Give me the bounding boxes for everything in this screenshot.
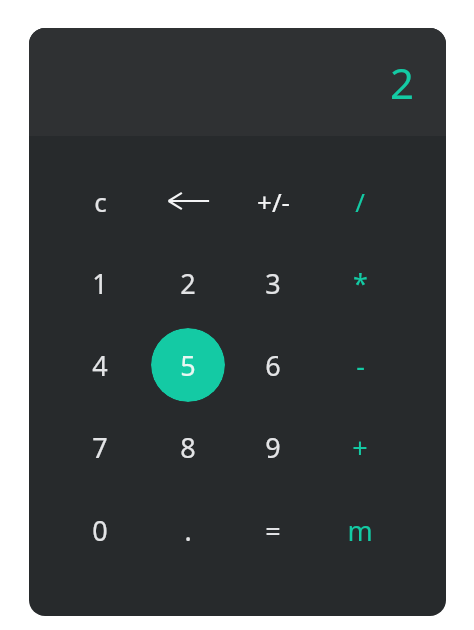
staticText: 7 bbox=[92, 429, 108, 466]
staticText: 2 bbox=[389, 54, 414, 111]
staticText: 1 bbox=[92, 265, 108, 302]
staticText: c bbox=[94, 184, 107, 219]
staticText: 9 bbox=[265, 429, 281, 466]
button[interactable]: 8 bbox=[151, 410, 225, 484]
staticText: = bbox=[265, 512, 281, 549]
button[interactable]: m bbox=[323, 493, 397, 567]
staticText: +/- bbox=[257, 184, 290, 219]
button[interactable]: - bbox=[323, 328, 397, 402]
staticText: 4 bbox=[92, 347, 108, 384]
button[interactable]: +/- bbox=[236, 164, 310, 238]
button[interactable]: 5 bbox=[151, 328, 225, 402]
button[interactable]: 3 bbox=[236, 246, 310, 320]
button[interactable]: 4 bbox=[63, 328, 137, 402]
button[interactable]: / bbox=[323, 164, 397, 238]
other: Backspace bbox=[166, 189, 210, 213]
button[interactable]: 6 bbox=[236, 328, 310, 402]
button[interactable]: 1 bbox=[63, 246, 137, 320]
button[interactable]: . bbox=[151, 493, 225, 567]
button[interactable]: 7 bbox=[63, 410, 137, 484]
button[interactable]: 9 bbox=[236, 410, 310, 484]
staticText: 6 bbox=[265, 347, 281, 384]
button[interactable]: 2 bbox=[151, 246, 225, 320]
button[interactable]: Backspace bbox=[151, 164, 225, 238]
button[interactable]: c bbox=[63, 164, 137, 238]
button[interactable]: 0 bbox=[63, 493, 137, 567]
staticText: / bbox=[355, 184, 365, 219]
staticText: 8 bbox=[180, 429, 196, 466]
button[interactable]: * bbox=[323, 246, 397, 320]
staticText: 0 bbox=[92, 512, 108, 549]
staticText: 5 bbox=[180, 347, 196, 384]
button[interactable]: + bbox=[323, 410, 397, 484]
staticText: . bbox=[184, 512, 192, 549]
button[interactable]: = bbox=[236, 493, 310, 567]
staticText: * bbox=[353, 265, 368, 302]
staticText: - bbox=[356, 347, 365, 384]
staticText: + bbox=[352, 429, 368, 466]
staticText: 2 bbox=[180, 265, 196, 302]
staticText: m bbox=[347, 512, 373, 549]
staticText: 3 bbox=[265, 265, 281, 302]
